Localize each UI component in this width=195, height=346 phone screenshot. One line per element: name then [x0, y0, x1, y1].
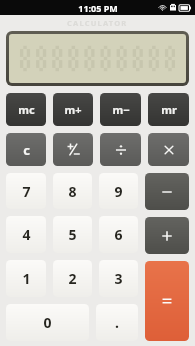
button[interactable]: decimal point [96, 304, 138, 341]
staticText: m+ [64, 102, 82, 117]
staticText: 8 [68, 182, 77, 201]
staticText: 1 [22, 269, 31, 288]
button[interactable]: 3 [99, 260, 138, 297]
staticText: 0 [43, 313, 52, 332]
button[interactable]: plus [145, 217, 189, 254]
button[interactable]: 2 [53, 260, 92, 297]
button[interactable]: 8 [53, 173, 92, 209]
button[interactable]: plus minus sign [53, 133, 93, 166]
button[interactable]: memory recall [148, 93, 189, 126]
staticText: 7 [22, 182, 31, 201]
button[interactable]: 4 [6, 216, 46, 253]
staticText: c [23, 141, 30, 159]
staticText: 2 [68, 269, 77, 288]
button[interactable]: clear [6, 133, 46, 166]
button[interactable]: minus [145, 173, 189, 210]
button[interactable]: multiply [148, 133, 189, 166]
staticText: mr [161, 102, 177, 117]
staticText: mc [18, 102, 35, 117]
button[interactable]: memory subtract [100, 93, 141, 126]
staticText: m− [112, 102, 130, 117]
staticText: 5 [68, 225, 77, 244]
staticText: 3 [114, 269, 123, 288]
button[interactable]: 6 [99, 216, 138, 253]
staticText: 11:05 PM [78, 2, 118, 14]
button[interactable]: 7 [6, 173, 46, 209]
button[interactable]: 9 [99, 173, 138, 209]
button[interactable]: memory add [53, 93, 93, 126]
button[interactable]: 1 [6, 260, 46, 297]
staticText: 4 [22, 225, 31, 244]
staticText: 9 [114, 182, 123, 201]
staticText: 6 [114, 225, 123, 244]
staticText: CALCULATOR [67, 18, 128, 28]
button[interactable]: divide [100, 133, 141, 166]
button[interactable]: 0 [6, 304, 89, 341]
button[interactable]: 5 [53, 216, 92, 253]
button[interactable]: equals [145, 261, 189, 341]
staticText: . [115, 313, 119, 332]
button[interactable]: memory clear [6, 93, 46, 126]
